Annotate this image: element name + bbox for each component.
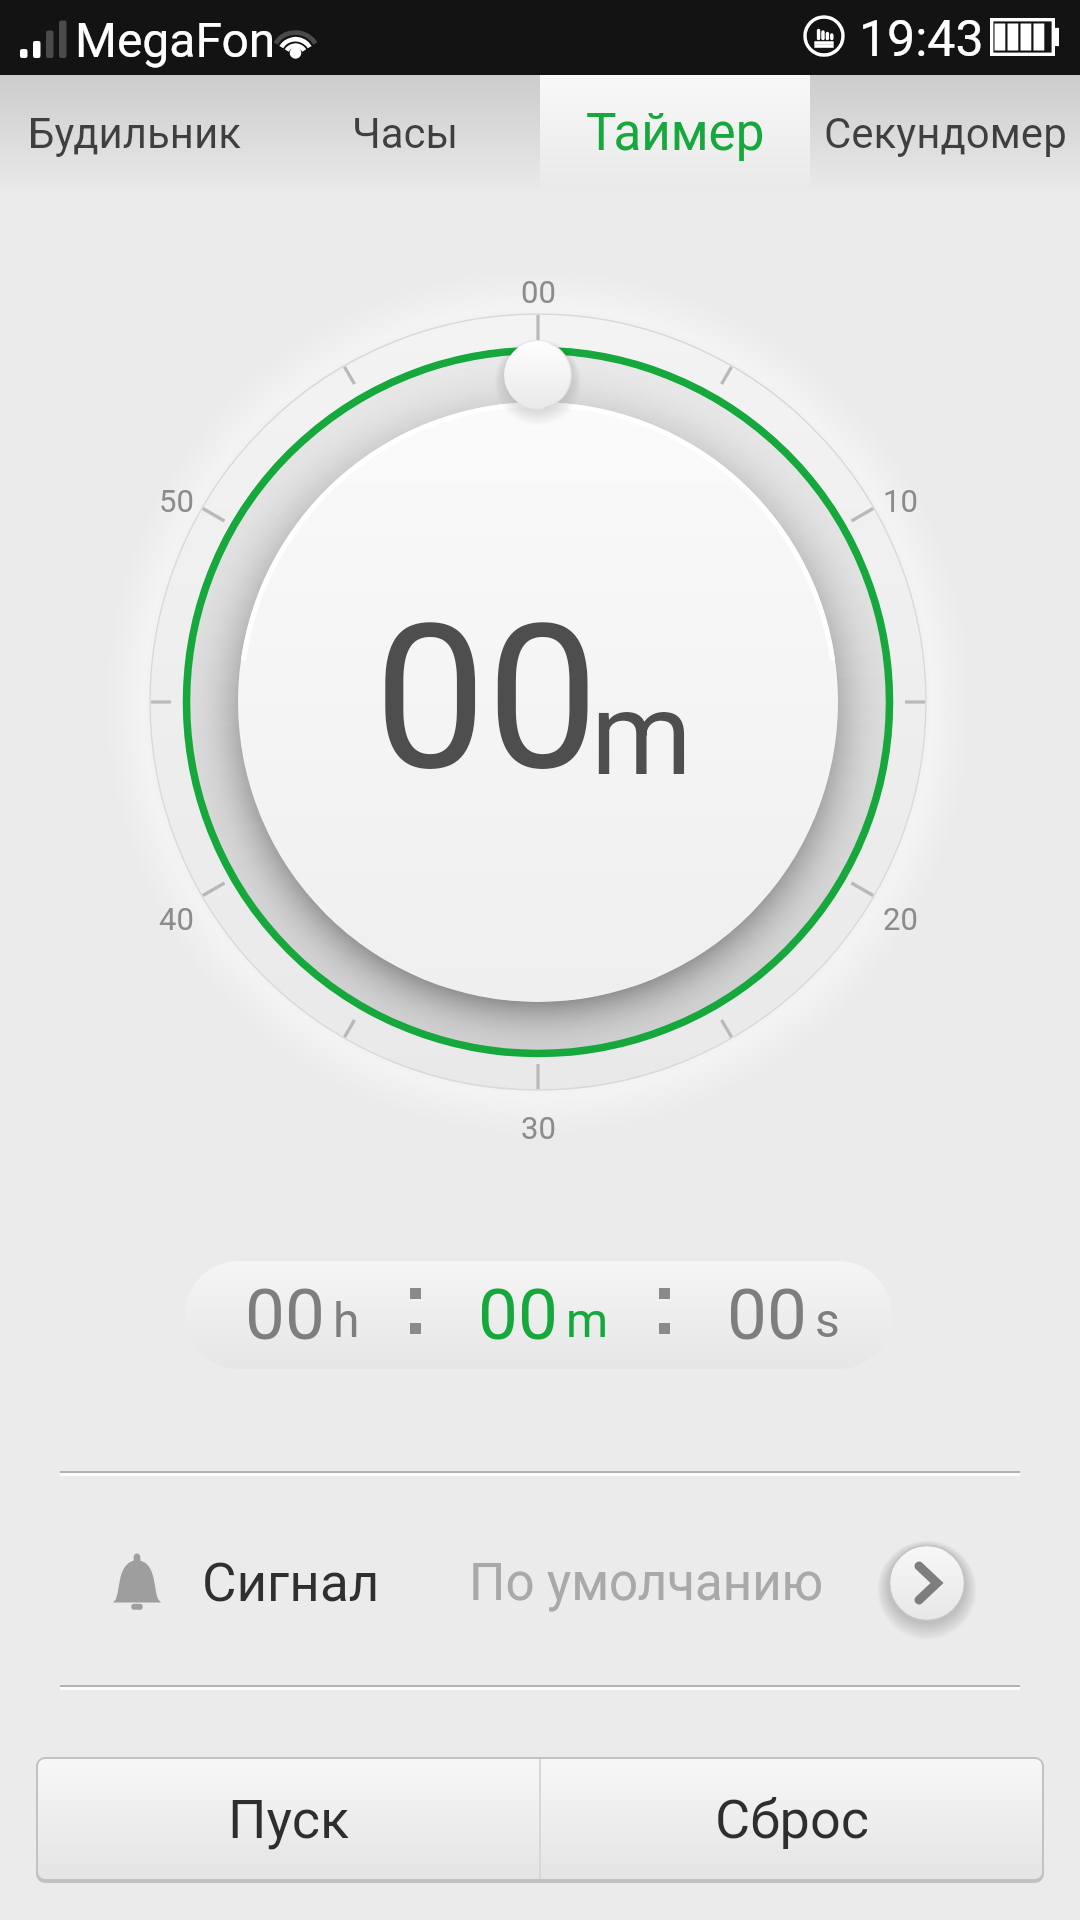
staticText: 20: [883, 901, 918, 937]
button[interactable]: Сброс: [541, 1759, 1042, 1879]
staticText: Сброс: [715, 1788, 869, 1851]
staticText: По умолчанию: [469, 1553, 824, 1613]
staticText: 00: [374, 581, 599, 815]
staticText: Будильник: [28, 109, 242, 158]
staticText: 30: [521, 1110, 556, 1146]
staticText: Пуск: [228, 1788, 350, 1851]
staticText: m: [566, 1292, 609, 1348]
staticText: 50: [159, 483, 194, 519]
button[interactable]: 00: [185, 1261, 892, 1369]
staticText: 00: [478, 1273, 558, 1356]
staticText: 00: [245, 1273, 325, 1356]
staticText: 00: [727, 1273, 807, 1356]
button[interactable]: Секундомер: [810, 75, 1080, 191]
staticText: 40: [159, 901, 194, 937]
button[interactable]: Часы: [270, 75, 540, 191]
staticText: 10: [883, 483, 918, 519]
button[interactable]: Пуск: [38, 1759, 539, 1879]
staticText: s: [815, 1292, 840, 1348]
staticText: Таймер: [586, 103, 765, 163]
button[interactable]: Сигнал: [0, 1477, 1080, 1689]
staticText: h: [333, 1292, 360, 1348]
staticText: 00: [521, 274, 556, 310]
staticText: Сигнал: [202, 1552, 380, 1614]
staticText: Часы: [352, 109, 459, 158]
other: Touch mode: [803, 15, 845, 57]
staticText: MegaFon: [75, 12, 276, 68]
button[interactable]: Будильник: [0, 75, 270, 191]
staticText: Секундомер: [824, 109, 1067, 158]
button[interactable]: Выбрать сигнал: [883, 1539, 971, 1627]
staticText: 19:43: [859, 10, 984, 69]
button[interactable]: Таймер: [540, 75, 810, 191]
staticText: m: [591, 667, 686, 802]
